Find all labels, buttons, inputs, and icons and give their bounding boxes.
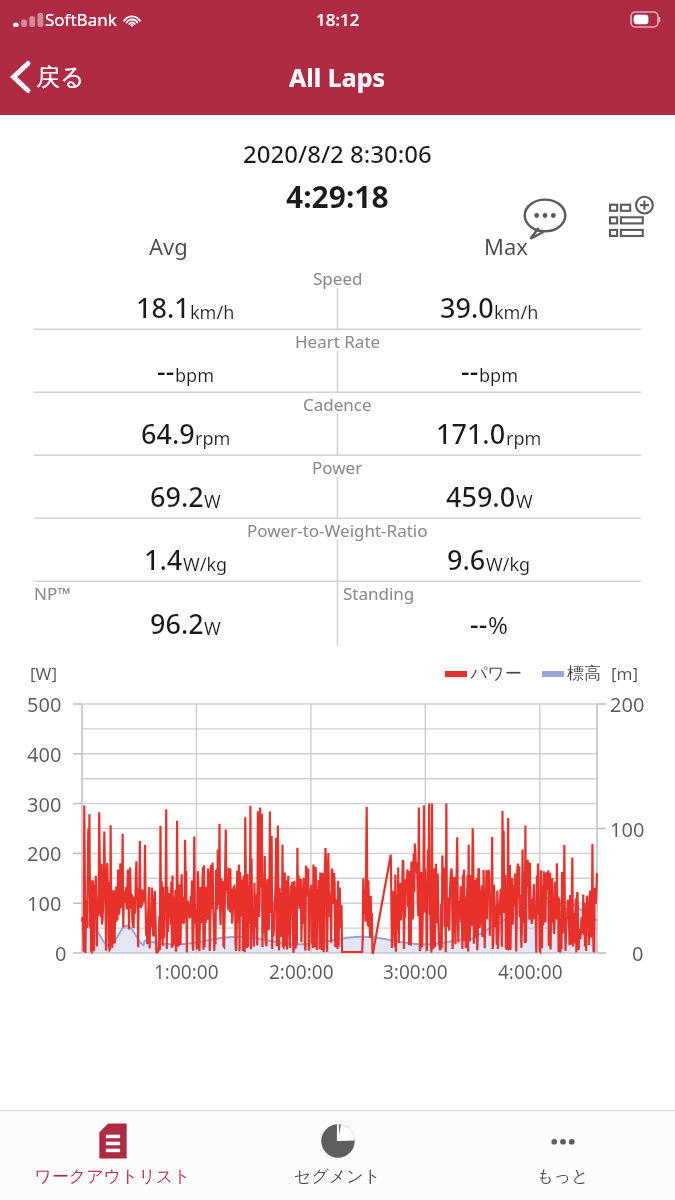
staticText: もっと [536, 1166, 589, 1187]
staticText: 459.0 [446, 478, 516, 515]
staticText: W [204, 616, 221, 641]
staticText: 69.2 [150, 478, 204, 515]
staticText: W/kg [183, 552, 228, 577]
button[interactable]: ワークアウトリスト [0, 1111, 225, 1200]
staticText: [W] [30, 662, 57, 685]
staticText: 0 [55, 940, 67, 967]
staticText: ワークアウトリスト [34, 1166, 191, 1187]
staticText: -- [470, 605, 488, 642]
staticText: Speed [313, 267, 363, 290]
staticText: 200 [610, 691, 645, 718]
staticText: -- [461, 352, 479, 389]
button[interactable]: 戻る [0, 52, 99, 102]
staticText: 64.9 [141, 415, 195, 452]
staticText: Cadence [303, 393, 372, 416]
staticText: Avg [149, 231, 188, 261]
staticText: 18.1 [136, 289, 190, 326]
staticText: 2:00:00 [269, 959, 334, 985]
staticText: % [488, 608, 508, 641]
button[interactable]: Cadence [34, 393, 641, 456]
staticText: km/h [494, 300, 539, 325]
staticText: 100 [27, 890, 62, 917]
staticText: 300 [27, 791, 62, 818]
staticText: 400 [27, 741, 62, 768]
staticText: rpm [506, 426, 542, 451]
staticText: 0 [632, 940, 644, 967]
staticText: 4:00:00 [498, 959, 563, 985]
staticText: 100 [610, 816, 645, 843]
staticText: -- [157, 352, 175, 389]
staticText: Standing [343, 582, 415, 605]
staticText: bpm [175, 363, 214, 388]
staticText: 200 [27, 840, 62, 867]
button[interactable]: Power [34, 456, 641, 519]
button[interactable]: Power-to-Weight-Ratio [34, 519, 641, 582]
staticText: 9.6 [447, 541, 486, 578]
staticText: SoftBank [45, 8, 117, 31]
button[interactable]: もっと [450, 1111, 675, 1200]
staticText: W [516, 489, 533, 514]
staticText: 3:00:00 [383, 959, 448, 985]
staticText: rpm [195, 426, 231, 451]
staticText: Power [312, 456, 363, 479]
button[interactable]: Speed [34, 267, 641, 330]
staticText: 標高 [567, 663, 601, 684]
button[interactable]: NP™ [34, 582, 641, 646]
staticText: W [204, 489, 221, 514]
button[interactable]: Comments [519, 193, 571, 245]
staticText: セグメント [294, 1166, 381, 1187]
staticText: W/kg [486, 552, 531, 577]
staticText: 96.2 [150, 605, 204, 642]
staticText: 戻る [36, 62, 85, 92]
staticText: NP™ [34, 582, 71, 605]
staticText: bpm [479, 363, 518, 388]
button[interactable]: セグメント [225, 1111, 450, 1200]
staticText: [m] [611, 662, 639, 685]
staticText: 171.0 [436, 415, 506, 452]
staticText: 18:12 [316, 8, 360, 31]
staticText: All Laps [289, 60, 386, 94]
button[interactable]: Add to list [605, 193, 657, 245]
staticText: Max [484, 231, 528, 261]
button[interactable]: Heart Rate [34, 330, 641, 393]
staticText: パワー [470, 663, 522, 684]
staticText: 4:29:18 [286, 176, 389, 217]
staticText: 1:00:00 [154, 959, 219, 985]
staticText: km/h [190, 300, 235, 325]
staticText: 39.0 [440, 289, 494, 326]
staticText: Power-to-Weight-Ratio [247, 519, 428, 542]
staticText: 2020/8/2 8:30:06 [243, 137, 432, 170]
staticText: 1.4 [144, 541, 183, 578]
staticText: 500 [27, 691, 62, 718]
staticText: Heart Rate [295, 330, 381, 353]
